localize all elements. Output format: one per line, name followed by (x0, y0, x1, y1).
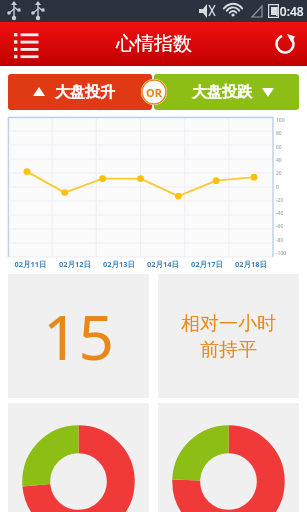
button[interactable]: OR (141, 79, 167, 105)
staticText: 80 (276, 130, 299, 137)
staticText: 02月17日 (185, 259, 229, 269)
staticText: 02月12日 (53, 259, 97, 269)
staticText: -80 (276, 237, 299, 244)
button[interactable]: 相对一小时 前持平 (158, 274, 299, 398)
button[interactable]: Menu (0, 22, 44, 66)
staticText: 20 (276, 170, 299, 177)
staticText: 10:48 (273, 3, 304, 19)
button[interactable]: 大盘投升 (8, 74, 152, 110)
staticText: 0 (276, 184, 299, 191)
staticText: 15 (43, 294, 114, 378)
staticText: OR (146, 85, 162, 100)
staticText: 40 (276, 157, 299, 164)
staticText: 02月14日 (141, 259, 185, 269)
staticText: -40 (276, 210, 299, 217)
button[interactable] (158, 403, 299, 512)
staticText: 60 (276, 144, 299, 151)
staticText: 心情指数 (116, 32, 192, 56)
button[interactable] (8, 403, 149, 512)
staticText: 大盘投升 (55, 83, 115, 102)
button[interactable]: 15 (8, 274, 149, 398)
staticText: 02月11日 (8, 259, 53, 269)
button[interactable]: Refresh (263, 22, 307, 66)
staticText: 02月18日 (229, 259, 273, 269)
staticText: -60 (276, 223, 299, 230)
staticText: 相对一小时 前持平 (181, 312, 276, 361)
staticText: 大盘投跌 (192, 83, 252, 102)
button[interactable]: 大盘投跌 (154, 74, 299, 110)
staticText: -20 (276, 197, 299, 204)
staticText: -100 (276, 250, 299, 257)
staticText: 100 (276, 117, 299, 124)
staticText: 02月13日 (97, 259, 141, 269)
